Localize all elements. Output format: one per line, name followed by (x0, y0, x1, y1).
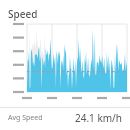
button[interactable]: Speed chart (0, 21, 130, 105)
button[interactable]: Avg Speed (0, 108, 130, 128)
staticText: Speed (8, 7, 38, 21)
staticText: Avg Speed (8, 113, 43, 123)
staticText: 24.1 km/h (74, 111, 122, 125)
